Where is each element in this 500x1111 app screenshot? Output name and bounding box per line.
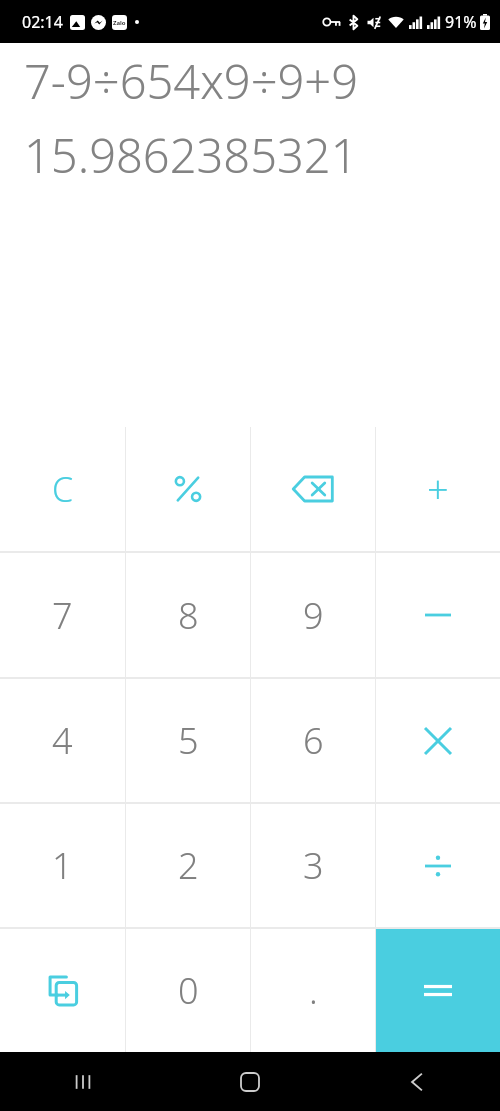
button[interactable]: 6 (251, 679, 375, 802)
staticText: 0 (178, 966, 199, 1015)
staticText: 3 (303, 841, 324, 890)
button[interactable]: 3 (251, 804, 375, 927)
button[interactable]: Minus (376, 553, 500, 677)
button[interactable]: Backspace (251, 427, 375, 551)
staticText: . (309, 966, 318, 1015)
button[interactable]: Equals (376, 929, 500, 1052)
staticText: 1 (52, 841, 73, 890)
staticText: 15.9862385321 (24, 123, 358, 187)
staticText: 5 (178, 716, 199, 765)
button[interactable]: C (0, 427, 125, 551)
staticText: 8 (178, 591, 199, 640)
staticText: 6 (303, 716, 324, 765)
button[interactable]: Multiply (376, 679, 500, 802)
staticText: Zalo (113, 19, 126, 27)
staticText: 9 (303, 591, 324, 640)
button[interactable]: 2 (126, 804, 250, 927)
staticText: 02:14 (22, 11, 63, 33)
staticText: 4 (52, 716, 73, 765)
staticText: + (427, 463, 449, 515)
button[interactable]: 5 (126, 679, 250, 802)
staticText: 7 (52, 591, 73, 640)
staticText: 2 (178, 841, 199, 890)
button[interactable]: Divide (376, 804, 500, 927)
button[interactable]: 8 (126, 553, 250, 677)
button[interactable]: + (376, 427, 500, 551)
button[interactable]: Back (333, 1052, 500, 1111)
button[interactable]: 9 (251, 553, 375, 677)
staticText: 7-9÷654x9÷9+9 (24, 49, 359, 113)
staticText: 91% (445, 11, 477, 33)
button[interactable]: Percent (126, 427, 250, 551)
button[interactable]: Recent apps (0, 1052, 166, 1111)
button[interactable]: 4 (0, 679, 125, 802)
staticText: C (52, 466, 74, 512)
button[interactable]: 1 (0, 804, 125, 927)
button[interactable]: 0 (126, 929, 250, 1052)
button[interactable]: Copy result (0, 929, 125, 1052)
button[interactable]: 7 (0, 553, 125, 677)
button[interactable]: Home (166, 1052, 333, 1111)
